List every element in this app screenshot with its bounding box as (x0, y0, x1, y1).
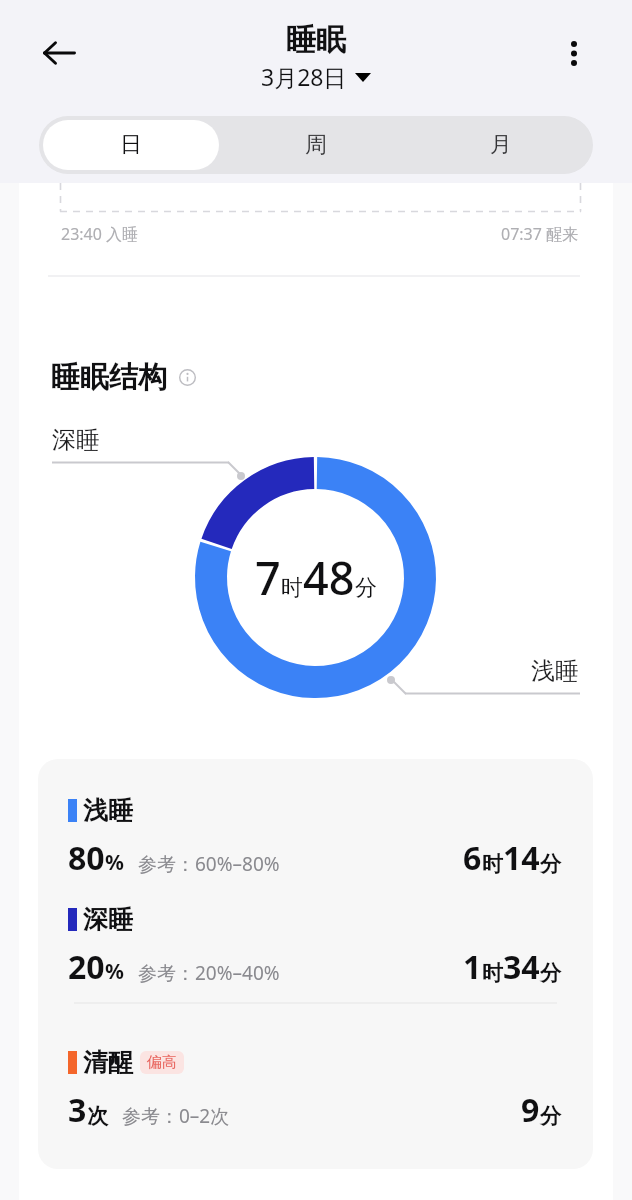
staticText: 时 (281, 574, 303, 602)
staticText: 48 (303, 547, 355, 608)
staticText: 分 (540, 1103, 561, 1129)
button[interactable]: Info (179, 369, 196, 386)
staticText: 浅睡 (83, 795, 133, 826)
staticText: 时 (482, 960, 503, 986)
staticText: 3 (68, 1088, 87, 1132)
staticText: 月 (490, 131, 512, 159)
staticText: 深睡 (83, 904, 133, 935)
staticText: 浅睡 (531, 656, 579, 686)
button[interactable]: More options (544, 23, 604, 83)
staticText: 深睡 (52, 425, 100, 455)
staticText: 07:37 醒来 (501, 223, 579, 245)
staticText: 3月28日 (261, 61, 347, 92)
button[interactable]: 周 (227, 120, 404, 170)
staticText: 分 (355, 574, 377, 602)
staticText: 9 (521, 1088, 540, 1132)
staticText: 1 (463, 945, 482, 989)
staticText: 周 (305, 131, 327, 159)
staticText: 6 (463, 836, 482, 880)
staticText: 次 (87, 1103, 108, 1129)
staticText: % (105, 957, 124, 986)
staticText: 20 (68, 945, 105, 989)
staticText: 80 (68, 836, 105, 880)
staticText: 睡眠结构 (51, 359, 167, 396)
staticText: % (105, 848, 124, 877)
staticText: 偏高 (147, 1053, 177, 1072)
staticText: 睡眠 (286, 21, 346, 59)
staticText: 7 (255, 547, 281, 608)
button[interactable]: 3月28日 (261, 61, 371, 92)
staticText: 参考：0–2次 (122, 1103, 230, 1129)
staticText: 时 (482, 851, 503, 877)
staticText: 34 (503, 945, 540, 989)
button[interactable]: Back (27, 21, 91, 85)
staticText: 分 (540, 960, 561, 986)
staticText: 23:40 入睡 (61, 223, 139, 245)
button[interactable]: 日 (43, 120, 219, 170)
staticText: 分 (540, 851, 561, 877)
staticText: 参考：60%–80% (138, 851, 280, 877)
staticText: 清醒 (83, 1047, 133, 1078)
staticText: 14 (503, 836, 540, 880)
staticText: 参考：20%–40% (138, 960, 280, 986)
staticText: 日 (120, 131, 142, 159)
button[interactable]: 月 (412, 120, 589, 170)
